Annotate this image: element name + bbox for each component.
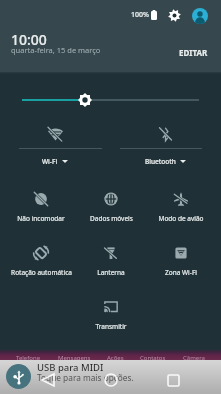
button[interactable]: Câmera — [183, 354, 205, 360]
staticText: quarta-feira, 15 de março — [11, 45, 101, 55]
button[interactable]: Contatos — [140, 354, 166, 360]
button[interactable]: Lanterna — [76, 243, 146, 297]
staticText: Zona Wi-Fi — [165, 268, 197, 277]
staticText: Toque para mais opções. — [37, 372, 134, 383]
button[interactable]: Telefone — [16, 354, 41, 360]
button[interactable]: Bluetooth — [110, 121, 221, 173]
staticText: Contatos — [140, 354, 166, 360]
button[interactable]: Home — [97, 366, 125, 394]
button[interactable]: User account — [191, 7, 208, 24]
staticText: Modo de avião — [158, 214, 204, 223]
staticText: Bluetooth — [145, 157, 176, 166]
button[interactable]: Não incomodar — [6, 189, 76, 243]
staticText: Wi-Fi — [42, 157, 58, 166]
button[interactable]: Mensagens — [58, 354, 91, 360]
button[interactable]: Wi-Fi — [0, 121, 110, 173]
button[interactable]: Recents — [159, 366, 187, 394]
button[interactable]: Modo de avião — [146, 189, 216, 243]
button[interactable]: Brightness — [0, 89, 221, 111]
staticText: Lanterna — [97, 268, 125, 277]
staticText: 100% — [131, 10, 149, 20]
staticText: Dados móveis — [90, 214, 133, 223]
button[interactable]: USB para MIDI — [0, 360, 221, 394]
button[interactable]: Dados móveis — [76, 189, 146, 243]
staticText: Ações — [107, 354, 124, 360]
button[interactable]: Settings — [166, 7, 182, 23]
button[interactable]: Zona Wi-Fi — [146, 243, 216, 297]
staticText: Não incomodar — [17, 214, 65, 223]
staticText: Telefone — [16, 354, 41, 360]
button[interactable]: Ações — [107, 354, 124, 360]
staticText: USB para MIDI — [37, 361, 104, 374]
staticText: 10:00 — [11, 30, 47, 49]
staticText: Câmera — [183, 354, 205, 360]
button[interactable]: EDITAR — [177, 44, 210, 61]
staticText: Mensagens — [58, 354, 91, 360]
staticText: EDITAR — [179, 47, 208, 58]
button[interactable]: Rotação automática — [6, 243, 76, 297]
staticText: Transmitir — [95, 322, 127, 331]
staticText: Rotação automática — [11, 268, 72, 277]
button[interactable]: Transmitir — [76, 297, 146, 351]
button[interactable]: Back — [34, 366, 62, 394]
